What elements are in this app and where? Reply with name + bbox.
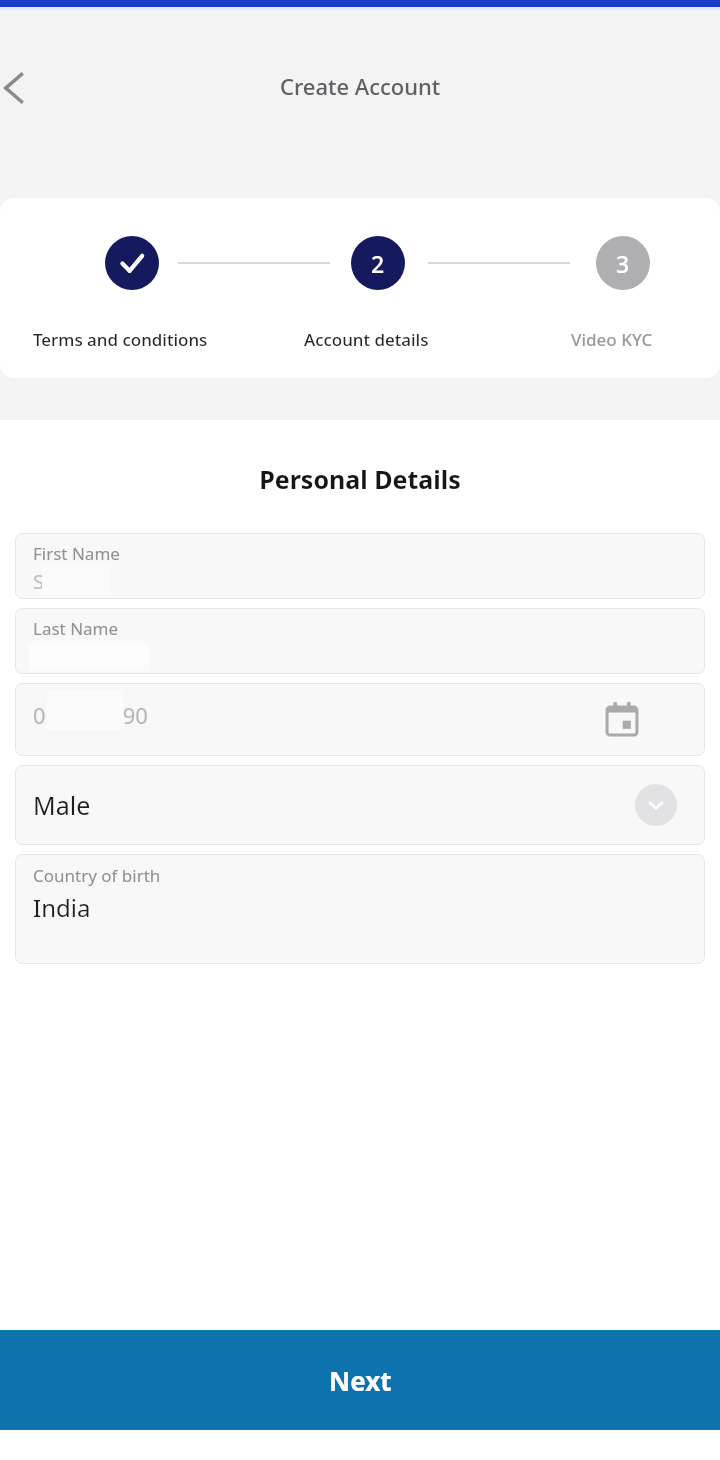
button[interactable]: 2 <box>351 236 405 290</box>
staticText: Country of birth <box>33 864 161 887</box>
button[interactable]: Back <box>0 60 42 116</box>
staticText: Sanjay <box>33 568 95 595</box>
button[interactable]: Next <box>0 1330 720 1430</box>
staticText: Video KYC <box>571 328 653 351</box>
staticText: 05-06-1990 <box>33 700 148 730</box>
staticText: India <box>33 891 91 924</box>
staticText: Terms and conditions <box>33 328 208 351</box>
staticText: 2 <box>371 248 385 279</box>
staticText: Create Account <box>280 71 441 101</box>
staticText: Account details <box>304 328 429 351</box>
staticText: Male <box>33 788 91 822</box>
button[interactable]: Male <box>15 765 705 845</box>
button[interactable]: Country of birth <box>15 854 705 964</box>
staticText: Next <box>329 1363 392 1398</box>
button[interactable] <box>105 236 159 290</box>
staticText: Last Name <box>33 617 119 640</box>
button[interactable]: Pick date <box>599 697 645 743</box>
button[interactable]: 3 <box>596 236 650 290</box>
staticText: Personal Details <box>0 462 720 496</box>
staticText: 3 <box>616 248 630 279</box>
staticText: First Name <box>33 542 120 565</box>
